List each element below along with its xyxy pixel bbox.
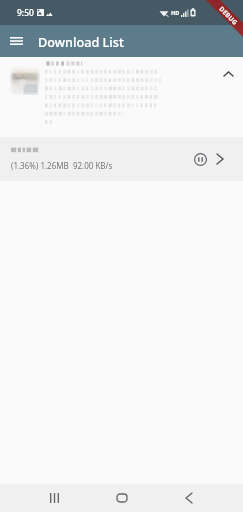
staticText: HD — [171, 9, 180, 16]
staticText: DEBUG — [217, 4, 240, 27]
staticText: (1.36%) 1.26MB 92.00 KB/s — [11, 160, 113, 171]
button[interactable]: Details — [210, 149, 230, 169]
button[interactable]: (1.36%) 1.26MB 92.00 KB/s — [0, 137, 243, 181]
button[interactable]: Home — [108, 484, 136, 512]
button[interactable]: Back — [175, 484, 203, 512]
staticText: 9:50 — [17, 7, 34, 19]
button[interactable]: Pause — [189, 148, 211, 170]
button[interactable]: Menu — [5, 30, 27, 52]
button[interactable]: Collapse — [217, 63, 239, 85]
button[interactable]: Collapse — [0, 57, 243, 137]
button[interactable]: Recents — [40, 484, 68, 512]
staticText: Download List — [38, 33, 124, 50]
